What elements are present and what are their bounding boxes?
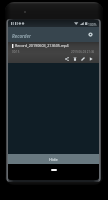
button[interactable]: Hide [8,154,99,164]
staticText: 100% [88,22,97,26]
button[interactable]: Play [87,55,95,63]
button[interactable]: Settings [85,29,96,40]
staticText: Recorder [12,33,31,39]
staticText: Hide [49,157,58,162]
staticText: 00:15 [12,50,20,54]
button[interactable]: Rename [79,55,87,63]
staticText: 2019-06-03 21:36 [71,50,95,54]
button[interactable]: Share [63,55,71,63]
staticText: Record_20190603_213605.mp4 [15,43,69,48]
button[interactable]: Delete [71,55,79,63]
